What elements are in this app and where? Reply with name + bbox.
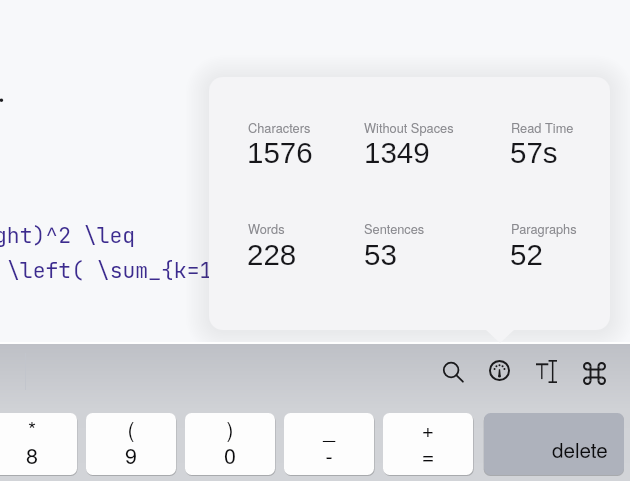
staticText: 8 <box>0 439 77 470</box>
button[interactable]: Commands <box>578 357 610 389</box>
button[interactable]: delete <box>484 413 624 475</box>
staticText: ) <box>185 414 275 444</box>
staticText: . <box>0 80 8 108</box>
staticText: Words <box>248 219 285 237</box>
button[interactable]: Text format <box>530 355 562 387</box>
staticText: + <box>383 414 473 444</box>
staticText: Without Spaces <box>364 118 454 136</box>
staticText: 0 <box>185 439 275 470</box>
staticText: - <box>284 439 374 470</box>
staticText: 1349 <box>364 136 430 169</box>
staticText: _ <box>284 414 374 444</box>
button[interactable]: + <box>383 413 473 475</box>
staticText: Read Time <box>511 118 574 136</box>
staticText: 9 <box>86 439 176 470</box>
staticText: ( <box>86 414 176 444</box>
staticText: Paragraphs <box>511 219 577 237</box>
button[interactable]: ( <box>86 413 176 475</box>
staticText: Characters <box>248 118 311 136</box>
staticText: delete <box>552 434 608 463</box>
button[interactable]: Statistics <box>483 354 515 386</box>
staticText: ght)^2 \leq <box>0 221 136 249</box>
button[interactable]: * <box>0 413 77 475</box>
button[interactable]: ) <box>185 413 275 475</box>
button[interactable]: _ <box>284 413 374 475</box>
button[interactable]: Search <box>437 356 469 388</box>
staticText: \left( \sum_{k=1 <box>7 256 213 284</box>
button[interactable] <box>209 77 610 330</box>
staticText: 228 <box>247 238 297 271</box>
staticText: Sentences <box>364 219 425 237</box>
staticText: * <box>0 414 77 444</box>
staticText: 53 <box>364 238 397 271</box>
staticText: 52 <box>510 238 543 271</box>
staticText: = <box>383 439 473 470</box>
staticText: 1576 <box>247 136 313 169</box>
staticText: 57s <box>510 136 558 169</box>
